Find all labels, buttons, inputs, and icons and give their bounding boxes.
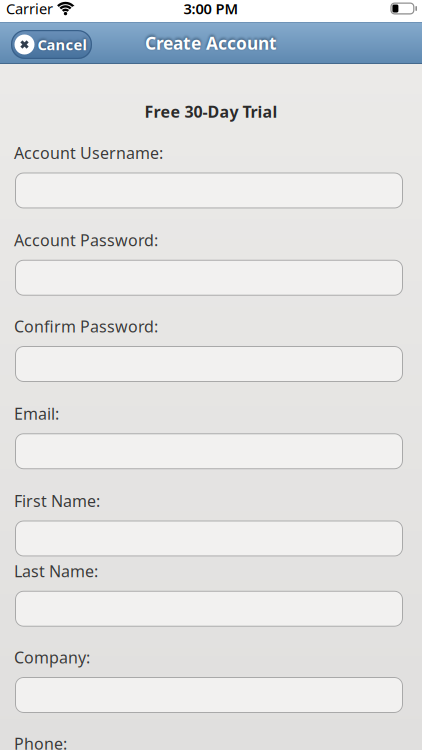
button[interactable]: Email bbox=[0, 433, 422, 469]
button[interactable]: Company bbox=[0, 677, 422, 713]
staticText: Phone: bbox=[14, 733, 67, 750]
button[interactable]: Cancel bbox=[11, 30, 92, 59]
button[interactable]: First Name bbox=[0, 520, 422, 556]
staticText: Account Username: bbox=[14, 142, 163, 163]
staticText: Free 30-Day Trial bbox=[144, 101, 277, 122]
button[interactable]: Account Username bbox=[0, 172, 422, 208]
staticText: Account Password: bbox=[14, 229, 158, 251]
staticText: 3:00 PM bbox=[183, 0, 238, 18]
button[interactable]: Confirm Password bbox=[0, 346, 422, 382]
staticText: Company: bbox=[14, 647, 90, 668]
staticText: Carrier bbox=[6, 0, 53, 18]
staticText: Confirm Password: bbox=[14, 316, 158, 337]
staticText: First Name: bbox=[14, 490, 100, 511]
staticText: Cancel bbox=[37, 35, 86, 54]
staticText: Email: bbox=[14, 403, 59, 424]
button[interactable]: Last Name bbox=[0, 591, 422, 627]
staticText: Create Account bbox=[145, 31, 277, 54]
button[interactable]: Account Password bbox=[0, 260, 422, 296]
staticText: Last Name: bbox=[14, 560, 98, 582]
